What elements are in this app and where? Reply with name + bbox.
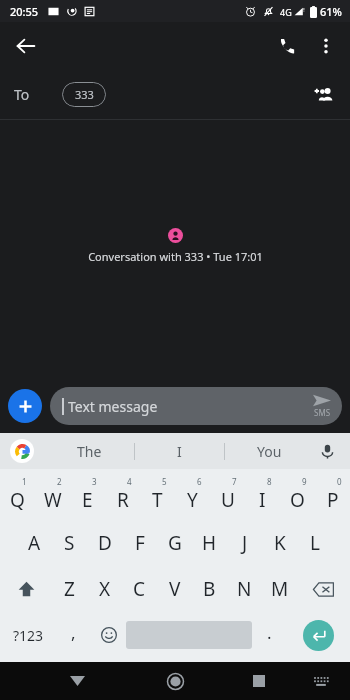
button[interactable]: I (135, 433, 224, 469)
staticText: I (259, 487, 266, 513)
staticText: N (237, 576, 252, 602)
staticText: I (177, 442, 182, 461)
button[interactable]: Backspace (297, 566, 350, 612)
staticText: 9 (302, 476, 307, 487)
button[interactable]: M (262, 566, 297, 612)
staticText: ?123 (13, 626, 44, 645)
button[interactable]: L (297, 520, 332, 566)
staticText: 5 (162, 476, 167, 487)
button[interactable]: C (122, 566, 157, 612)
button[interactable]: 1 (0, 474, 35, 520)
staticText: , (71, 621, 76, 644)
staticText: P (327, 487, 339, 513)
staticText: F (135, 530, 145, 556)
button[interactable]: You (225, 433, 314, 469)
button[interactable]: More options (306, 26, 346, 66)
button[interactable]: The (44, 433, 134, 469)
staticText: T (152, 487, 163, 513)
staticText: 7 (232, 476, 237, 487)
staticText: Z (64, 576, 75, 602)
staticText: E (82, 487, 93, 513)
button[interactable]: Recents (240, 662, 278, 700)
button[interactable]: Shift (0, 566, 52, 612)
button[interactable]: B (192, 566, 227, 612)
button[interactable]: K (262, 520, 297, 566)
staticText: Conversation with 333 • Tue 17:01 (88, 249, 263, 264)
button[interactable]: , (56, 612, 91, 658)
staticText: D (98, 530, 112, 556)
staticText: Q (10, 487, 25, 513)
button[interactable]: H (192, 520, 227, 566)
button[interactable]: G (157, 520, 192, 566)
staticText: To (14, 85, 30, 104)
button[interactable]: Call (266, 26, 306, 66)
staticText: S (64, 530, 75, 556)
staticText: 2 (57, 476, 62, 487)
button[interactable]: 8 (245, 474, 280, 520)
button[interactable]: 7 (210, 474, 245, 520)
button[interactable]: Add recipient (306, 77, 342, 113)
staticText: 61% (320, 4, 342, 19)
staticText: K (274, 530, 286, 556)
button[interactable]: D (87, 520, 122, 566)
button[interactable]: 6 (175, 474, 210, 520)
staticText: 4 (127, 476, 132, 487)
staticText: The (77, 442, 102, 461)
button[interactable]: 3 (70, 474, 105, 520)
staticText: SMS (314, 407, 331, 418)
staticText: H (202, 530, 217, 556)
button[interactable]: A (17, 520, 52, 566)
button[interactable]: J (227, 520, 262, 566)
button[interactable]: Home (156, 662, 194, 700)
staticText: 6 (197, 476, 202, 487)
button[interactable]: 333 (62, 82, 106, 107)
staticText: 1 (22, 476, 27, 487)
staticText: . (267, 621, 272, 644)
button[interactable]: Enter (303, 620, 334, 651)
button[interactable]: Z (52, 566, 87, 612)
button[interactable]: Voice input (313, 437, 341, 465)
staticText: A (28, 530, 41, 556)
staticText: Y (187, 487, 198, 513)
button[interactable]: Back (6, 26, 46, 66)
button[interactable]: . (252, 612, 287, 658)
staticText: Text message (68, 397, 158, 416)
staticText: J (242, 530, 248, 556)
staticText: 3 (92, 476, 97, 487)
staticText: U (221, 487, 235, 513)
staticText: R (117, 487, 129, 513)
staticText: O (290, 487, 305, 513)
button[interactable]: ?123 (0, 612, 56, 658)
staticText: 333 (75, 87, 94, 102)
staticText: 0 (337, 476, 342, 487)
button[interactable]: 9 (280, 474, 315, 520)
button[interactable]: S (52, 520, 87, 566)
button[interactable]: Text message (50, 387, 342, 425)
staticText: 4G (280, 6, 292, 18)
button[interactable]: Switch keyboard (304, 664, 338, 698)
staticText: B (203, 576, 216, 602)
button[interactable]: Google (10, 439, 34, 463)
button[interactable]: 2 (35, 474, 70, 520)
button[interactable]: Back (58, 662, 96, 700)
staticText: W (44, 487, 62, 513)
button[interactable]: Emoji (91, 612, 126, 658)
button[interactable]: 5 (140, 474, 175, 520)
staticText: X (99, 576, 111, 602)
button[interactable]: 4 (105, 474, 140, 520)
staticText: C (133, 576, 146, 602)
button[interactable]: N (227, 566, 262, 612)
staticText: M (271, 576, 289, 602)
staticText: G (168, 530, 182, 556)
button[interactable]: X (87, 566, 122, 612)
staticText: You (257, 442, 282, 461)
button[interactable]: Add attachment (8, 389, 42, 423)
staticText: 8 (267, 476, 272, 487)
button[interactable]: V (157, 566, 192, 612)
button[interactable]: 0 (315, 474, 350, 520)
staticText: L (310, 530, 320, 556)
staticText: 20:55 (10, 4, 39, 19)
button[interactable]: F (122, 520, 157, 566)
staticText: V (169, 576, 181, 602)
